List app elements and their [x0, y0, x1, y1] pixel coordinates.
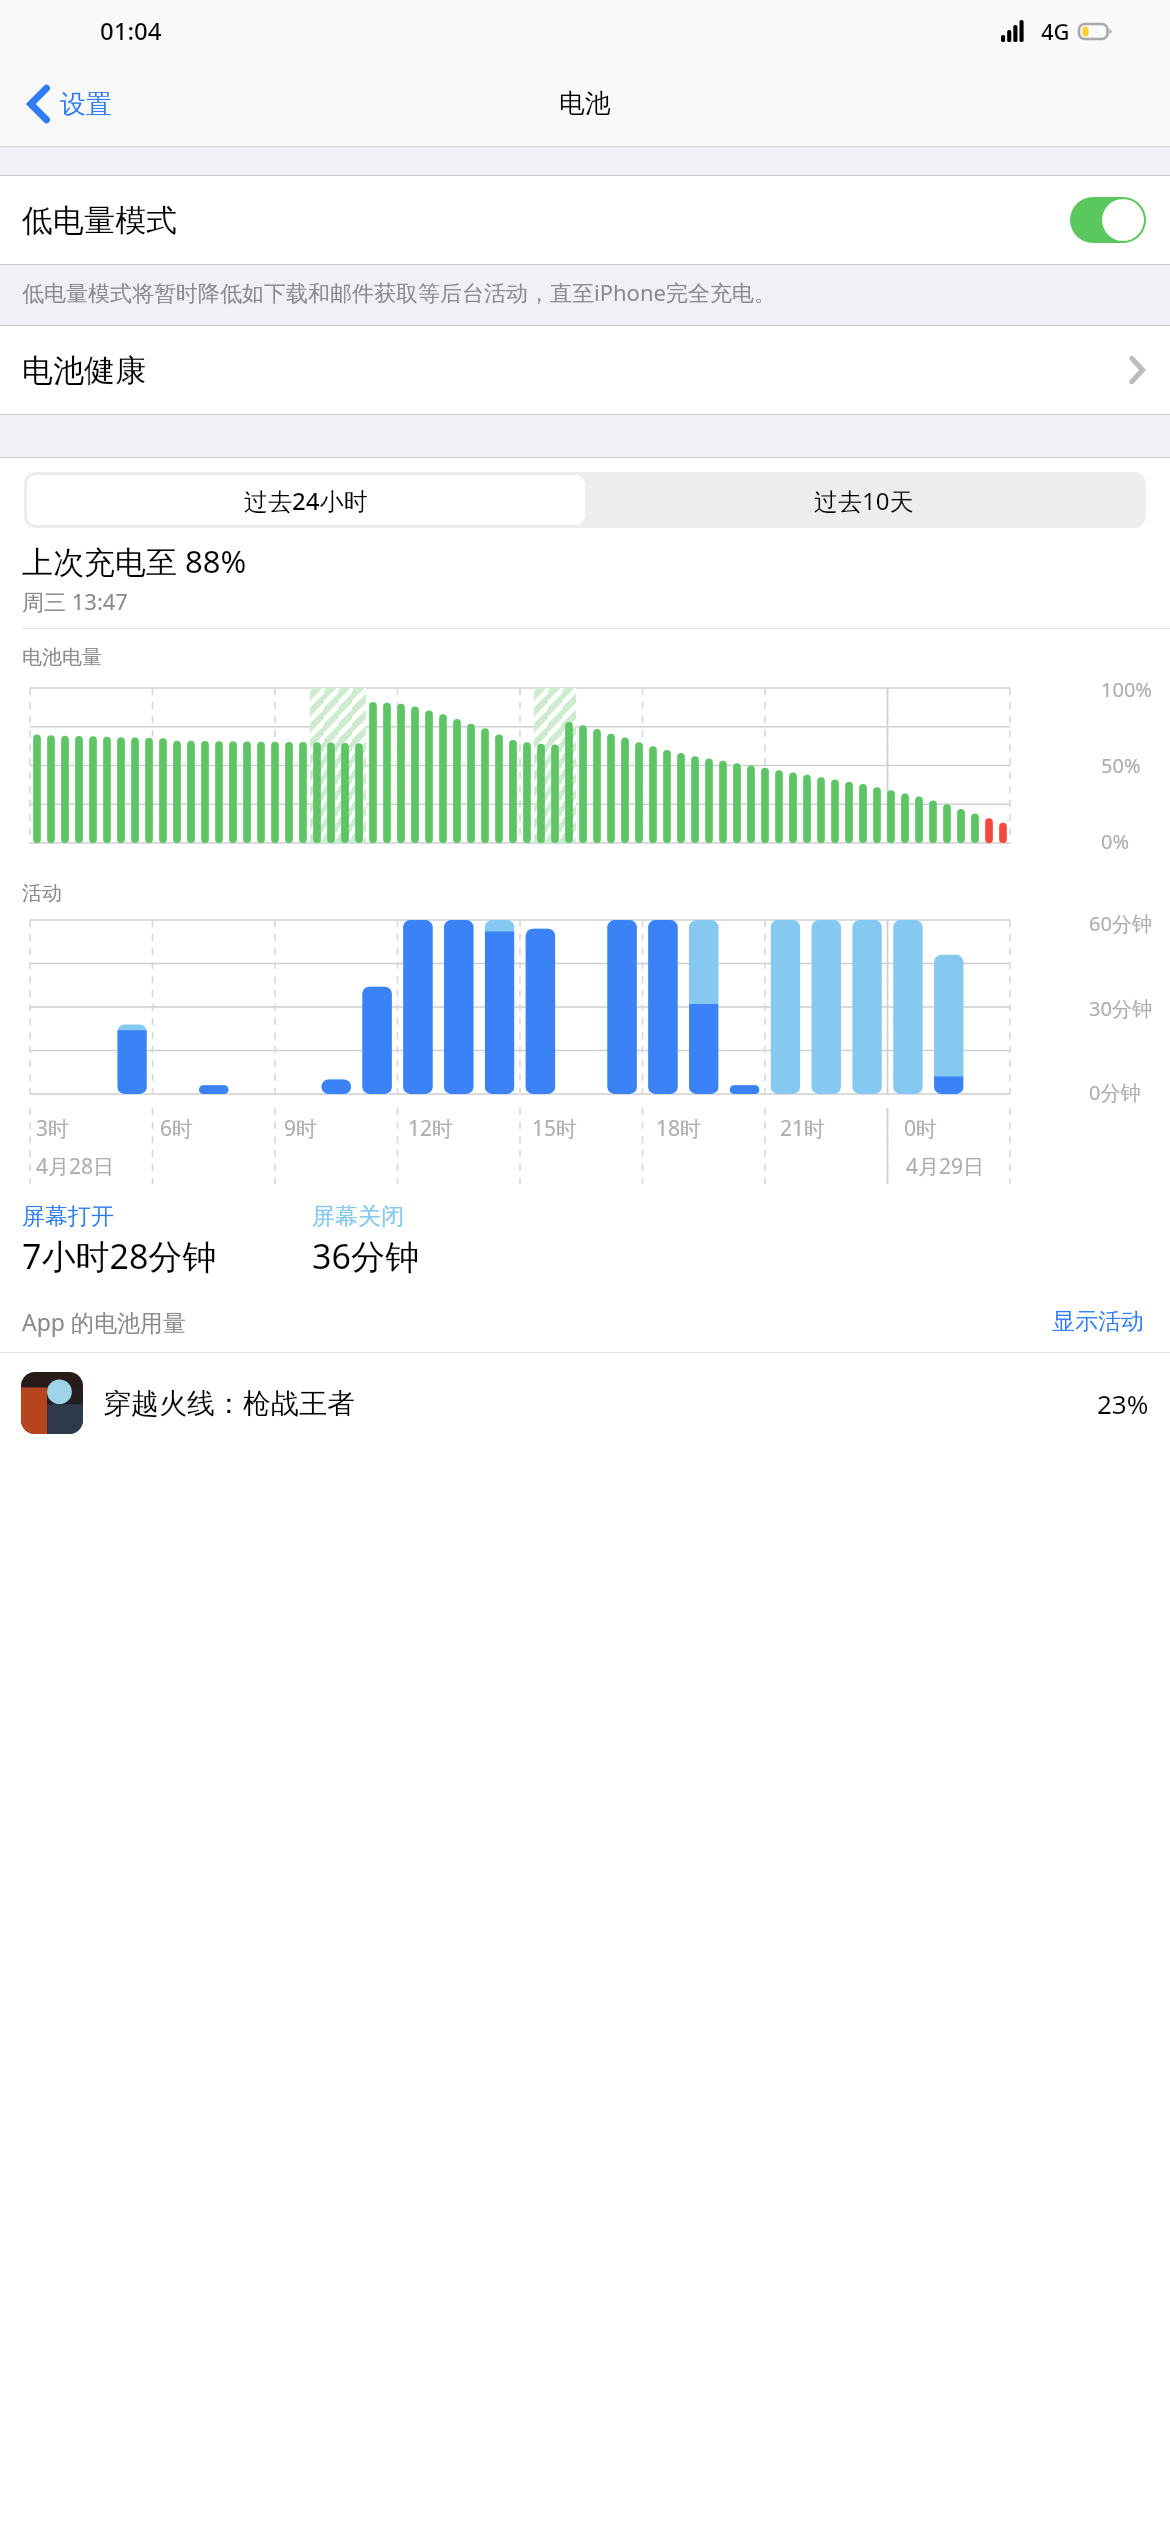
- staticText: 01:04: [100, 14, 162, 47]
- button[interactable]: 低电量模式开关: [1070, 197, 1146, 243]
- staticText: App 的电池用量: [22, 1306, 186, 1337]
- button[interactable]: 设置: [20, 78, 120, 130]
- staticText: 60分钟: [1089, 910, 1152, 937]
- staticText: 过去10天: [814, 484, 914, 517]
- staticText: 0分钟: [1089, 1079, 1141, 1106]
- staticText: 低电量模式将暂时降低如下载和邮件获取等后台活动，直至iPhone完全充电。: [22, 277, 776, 307]
- staticText: 设置: [60, 88, 112, 121]
- button[interactable]: 过去10天: [585, 475, 1143, 525]
- staticText: 21时: [780, 1114, 826, 1143]
- button[interactable]: 电池健康: [0, 326, 1170, 414]
- staticText: 36分钟: [312, 1233, 419, 1279]
- staticText: 0%: [1101, 828, 1130, 855]
- staticText: 30分钟: [1089, 995, 1152, 1022]
- staticText: 4G: [1041, 16, 1070, 46]
- staticText: 4月28日: [36, 1152, 115, 1181]
- staticText: 50%: [1101, 752, 1141, 779]
- staticText: 电池健康: [22, 351, 146, 390]
- staticText: 显示活动: [1052, 1307, 1144, 1336]
- button[interactable]: 低电量模式: [0, 176, 1170, 264]
- staticText: 活动: [22, 881, 62, 906]
- staticText: 100%: [1101, 676, 1152, 703]
- staticText: 0时: [904, 1114, 938, 1143]
- staticText: 电池: [559, 87, 611, 120]
- staticText: 7小时28分钟: [22, 1233, 217, 1279]
- staticText: 23%: [1097, 1386, 1149, 1421]
- button[interactable]: 穿越火线：枪战王者: [0, 1353, 1170, 1453]
- staticText: 4月29日: [906, 1152, 985, 1181]
- button[interactable]: 显示活动: [1048, 1303, 1148, 1340]
- staticText: 穿越火线：枪战王者: [103, 1386, 355, 1421]
- staticText: 屏幕打开: [22, 1202, 114, 1231]
- staticText: 周三 13:47: [22, 586, 128, 616]
- staticText: 9时: [284, 1114, 318, 1143]
- staticText: 低电量模式: [22, 201, 177, 240]
- staticText: 6时: [160, 1114, 194, 1143]
- staticText: 3时: [36, 1114, 70, 1143]
- staticText: 18时: [656, 1114, 702, 1143]
- staticText: 12时: [408, 1114, 454, 1143]
- staticText: 过去24小时: [244, 484, 368, 517]
- staticText: 屏幕关闭: [312, 1202, 404, 1231]
- staticText: 15时: [532, 1114, 578, 1143]
- staticText: 电池电量: [22, 645, 102, 670]
- staticText: 上次充电至 88%: [22, 540, 247, 582]
- button[interactable]: 过去24小时: [27, 475, 585, 525]
